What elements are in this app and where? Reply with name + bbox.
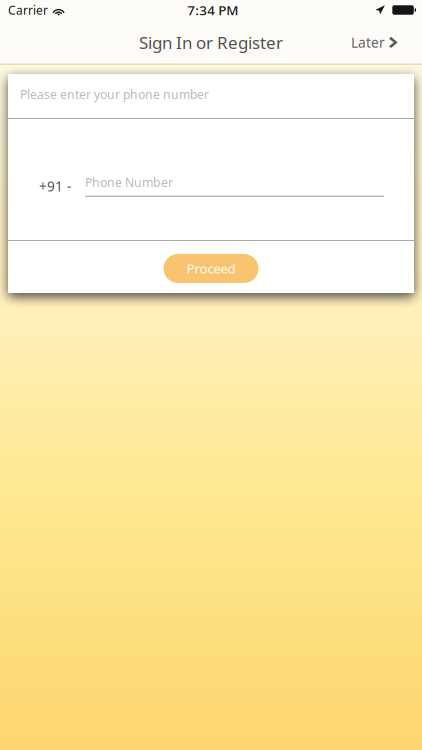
button[interactable]: Later <box>337 20 422 65</box>
staticText: Phone Number <box>85 174 173 191</box>
staticText: 7:34 PM <box>187 1 238 19</box>
staticText: Sign In or Register <box>139 31 283 54</box>
staticText: +91 - <box>39 177 71 195</box>
staticText: Please enter your phone number <box>20 86 209 103</box>
staticText: Carrier <box>8 2 48 18</box>
staticText: Later <box>351 33 385 52</box>
button[interactable]: Proceed <box>163 254 258 283</box>
staticText: Proceed <box>186 259 235 277</box>
